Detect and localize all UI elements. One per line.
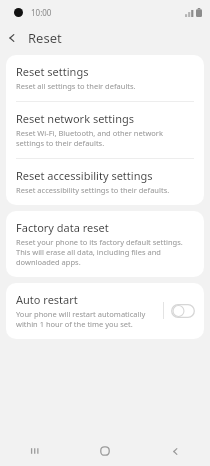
staticText: Reset [28, 29, 62, 47]
button[interactable]: Auto restart [6, 283, 204, 339]
button[interactable]: Back [0, 26, 24, 50]
button[interactable]: Back [140, 436, 210, 466]
staticText: Reset settings [16, 64, 89, 79]
staticText: Reset your phone to its factory default … [16, 237, 192, 267]
button[interactable]: Recents [0, 436, 70, 466]
staticText: Auto restart [16, 292, 78, 307]
staticText: Reset all settings to their defaults. [16, 81, 136, 91]
button[interactable]: Home [70, 436, 140, 466]
staticText: Factory data reset [16, 220, 109, 235]
staticText: Reset accessibility settings to their de… [16, 185, 170, 195]
staticText: 10:00 [31, 7, 52, 18]
staticText: Reset network settings [16, 111, 134, 126]
staticText: Reset accessibility settings [16, 168, 153, 183]
button[interactable]: Factory data reset [6, 211, 204, 277]
button[interactable]: Reset network settings [6, 102, 204, 158]
staticText: Reset Wi-Fi, Bluetooth, and other networ… [16, 128, 192, 148]
button[interactable]: Auto restart toggle [171, 304, 195, 318]
button[interactable]: Reset accessibility settings [6, 159, 204, 205]
button[interactable]: Reset settings [6, 55, 204, 101]
staticText: Your phone will restart automatically wi… [16, 309, 163, 329]
